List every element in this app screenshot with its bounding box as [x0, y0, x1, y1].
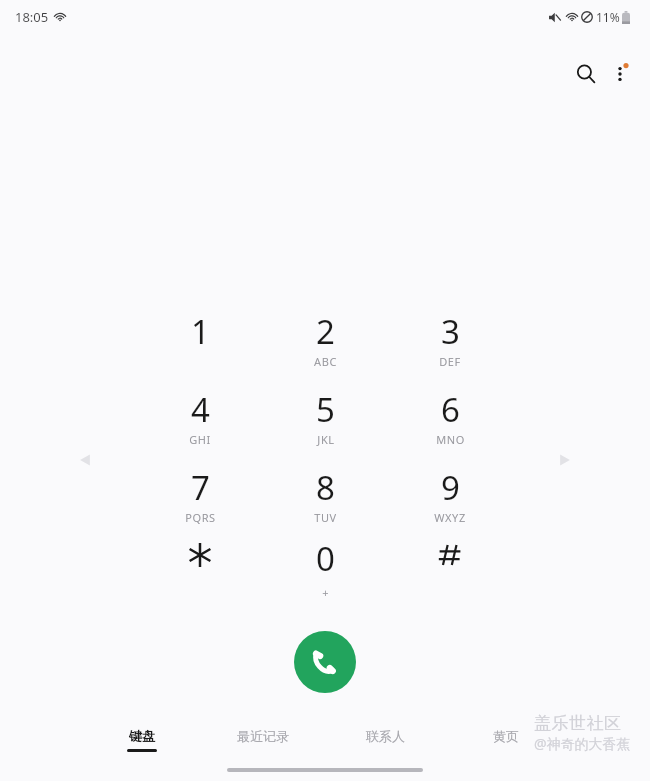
button[interactable]: 联系人: [327, 716, 443, 764]
staticText: WXYZ: [434, 510, 466, 525]
staticText: JKL: [317, 432, 335, 447]
button[interactable]: More options: [600, 54, 640, 94]
button[interactable]: 4: [152, 387, 248, 459]
staticText: 盖乐世社区: [534, 713, 622, 734]
button[interactable]: Call: [294, 631, 356, 693]
staticText: 18:05: [15, 8, 49, 26]
button[interactable]: [402, 536, 498, 608]
staticText: 1: [191, 309, 210, 354]
button[interactable]: 键盘: [84, 716, 200, 764]
staticText: 键盘: [129, 728, 155, 744]
staticText: GHI: [189, 432, 211, 447]
staticText: +: [322, 585, 329, 600]
staticText: MNO: [436, 432, 465, 447]
button[interactable]: 9: [402, 465, 498, 537]
button[interactable]: 5: [277, 387, 373, 459]
staticText: ABC: [314, 354, 337, 369]
staticText: 9: [441, 465, 460, 510]
staticText: 联系人: [366, 728, 405, 744]
staticText: PQRS: [185, 510, 216, 525]
staticText: 7: [191, 465, 210, 510]
button[interactable]: Next page: [552, 447, 578, 473]
button[interactable]: Search: [566, 54, 606, 94]
staticText: 3: [441, 309, 460, 354]
staticText: DEF: [439, 354, 461, 369]
button[interactable]: 7: [152, 465, 248, 537]
button[interactable]: 黄页: [448, 716, 564, 764]
button[interactable]: 2: [277, 309, 373, 381]
staticText: 4: [191, 387, 210, 432]
button[interactable]: 1: [152, 309, 248, 381]
staticText: TUV: [314, 510, 337, 525]
button[interactable]: 0: [277, 536, 373, 608]
button[interactable]: 最近记录: [205, 716, 321, 764]
button[interactable]: Previous page: [72, 447, 98, 473]
staticText: 2: [316, 309, 335, 354]
staticText: 黄页: [493, 728, 519, 744]
button[interactable]: 3: [402, 309, 498, 381]
staticText: 5: [316, 387, 335, 432]
staticText: 0: [316, 536, 335, 581]
staticText: 11%: [596, 9, 620, 25]
staticText: @神奇的大香蕉: [534, 734, 631, 753]
button[interactable]: 8: [277, 465, 373, 537]
button[interactable]: [152, 536, 248, 608]
staticText: 6: [441, 387, 460, 432]
button[interactable]: 6: [402, 387, 498, 459]
staticText: 8: [316, 465, 335, 510]
staticText: 最近记录: [237, 728, 289, 744]
